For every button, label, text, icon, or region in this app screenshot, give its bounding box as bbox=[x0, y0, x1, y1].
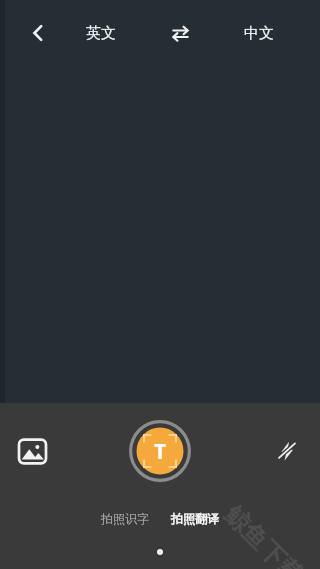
button[interactable]: 拍照识字 bbox=[101, 503, 149, 533]
button[interactable]: Swap languages bbox=[160, 13, 200, 53]
button[interactable]: Flash off bbox=[266, 430, 308, 472]
button[interactable]: 拍照翻译 bbox=[171, 503, 219, 533]
button[interactable]: Capture and translate bbox=[129, 420, 191, 482]
staticText: 鲸鱼下载 bbox=[218, 499, 310, 569]
staticText: T bbox=[154, 437, 167, 466]
staticText: 中文 bbox=[244, 24, 274, 43]
button[interactable]: Gallery bbox=[10, 429, 54, 473]
button[interactable]: Back bbox=[16, 11, 60, 55]
staticText: 拍照识字 bbox=[101, 511, 149, 526]
button[interactable]: 英文 bbox=[70, 11, 132, 55]
staticText: 英文 bbox=[86, 24, 116, 43]
staticText: 拍照翻译 bbox=[171, 511, 219, 526]
button[interactable]: 中文 bbox=[228, 11, 290, 55]
